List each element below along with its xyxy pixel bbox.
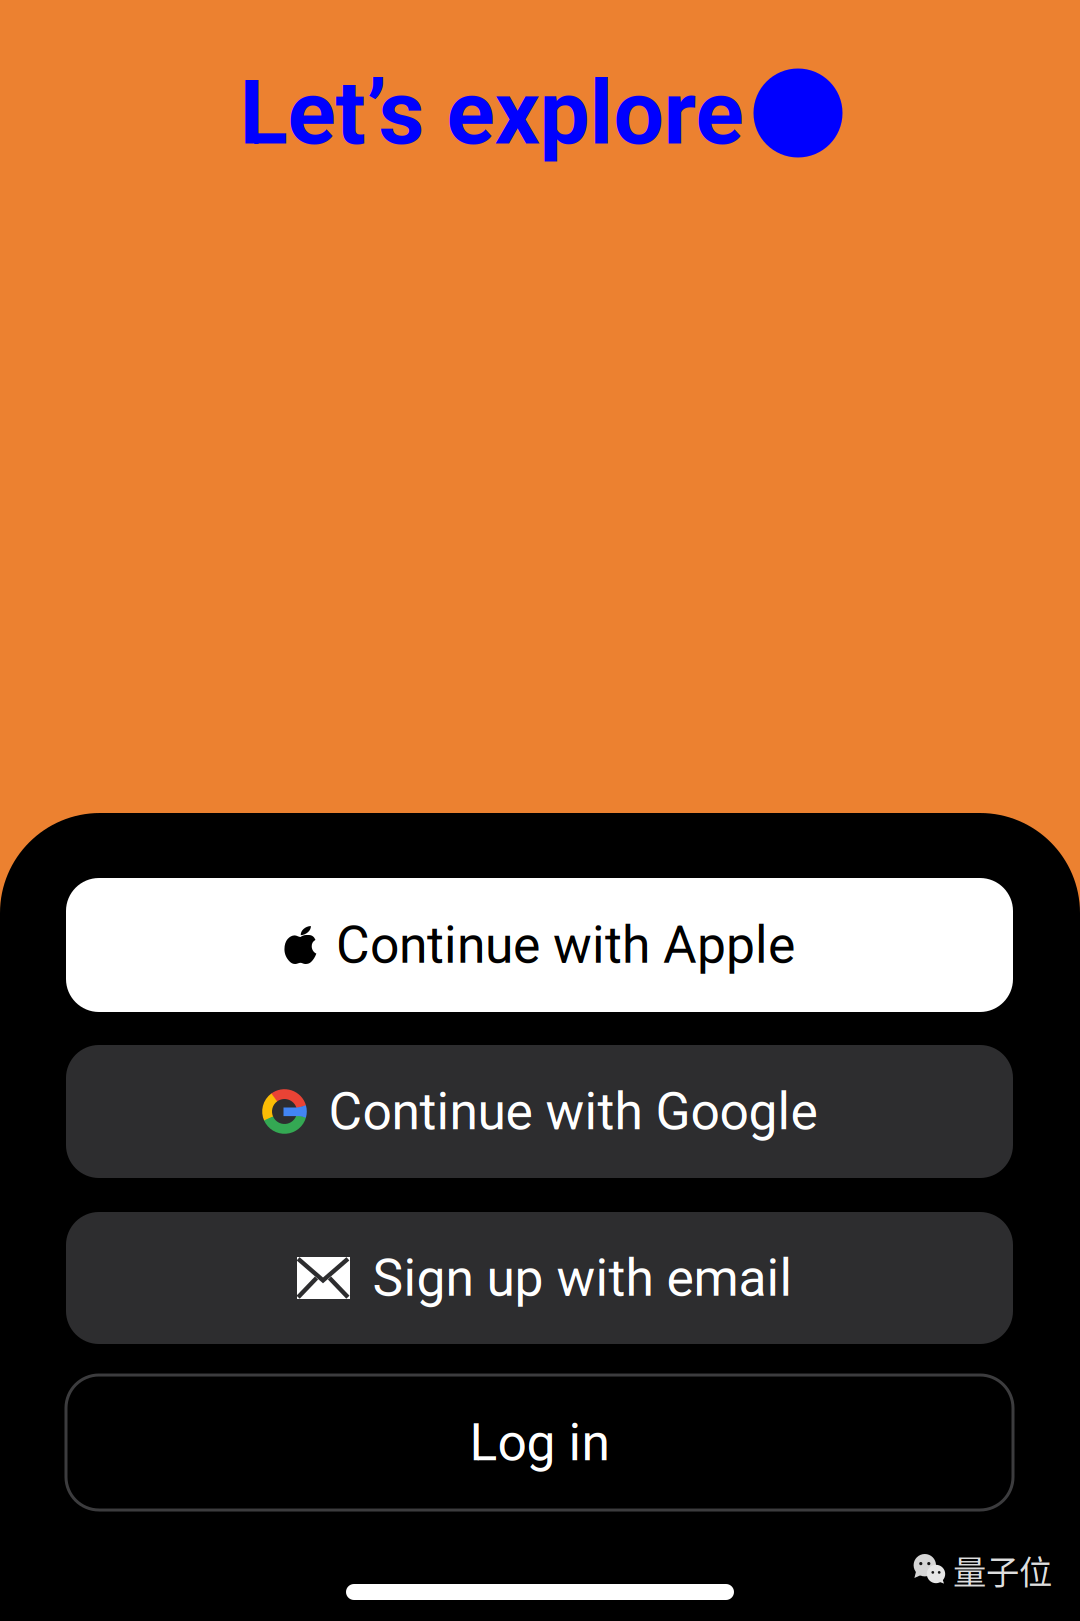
button[interactable]: Sign up with email [66, 1212, 1013, 1344]
staticText: Continue with Google [328, 1081, 817, 1142]
staticText: Let’s explore [239, 61, 743, 165]
button[interactable]: Continue with Google [66, 1045, 1013, 1178]
staticText: Continue with Apple [336, 915, 795, 975]
staticText: Log in [469, 1412, 609, 1473]
staticText: Sign up with email [372, 1248, 792, 1308]
staticText: 量子位 [953, 1546, 1052, 1594]
button[interactable]: Log in [66, 1375, 1013, 1510]
button[interactable]: Continue with Apple [66, 878, 1013, 1012]
